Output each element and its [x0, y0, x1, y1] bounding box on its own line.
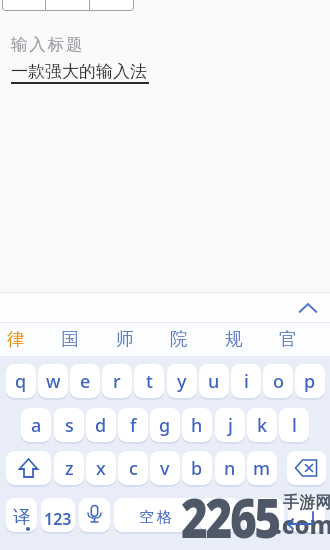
button[interactable] [294, 295, 322, 317]
button[interactable]: a [21, 408, 51, 442]
button[interactable]: u [199, 364, 229, 398]
button[interactable]: i [231, 364, 261, 398]
button[interactable]: 译 [6, 498, 37, 532]
button[interactable]: f [118, 408, 148, 442]
button[interactable]: y [167, 364, 197, 398]
staticText: x [96, 456, 106, 481]
button[interactable]: h [182, 408, 212, 442]
staticText: g [159, 413, 171, 438]
button[interactable]: s [54, 408, 84, 442]
staticText: u [208, 369, 220, 394]
staticText: 输入标题 [11, 34, 85, 55]
button[interactable]: g [150, 408, 180, 442]
staticText: 院 [170, 328, 188, 350]
button[interactable]: c [118, 451, 148, 485]
staticText: z [65, 456, 74, 481]
button[interactable]: 。 [244, 498, 284, 532]
button[interactable]: 师 [116, 326, 134, 352]
button[interactable]: b [182, 451, 212, 485]
button[interactable]: ， [200, 498, 240, 532]
button[interactable]: d [86, 408, 116, 442]
staticText: m [253, 456, 271, 481]
staticText: y [177, 369, 187, 394]
staticText: 123 [44, 508, 72, 530]
button[interactable]: x [86, 451, 116, 485]
button[interactable]: j [215, 408, 245, 442]
staticText: 2265 [181, 480, 279, 550]
button[interactable]: k [247, 408, 277, 442]
staticText: 国 [61, 328, 79, 350]
staticText: 空格 [138, 508, 173, 527]
staticText: 手游网 [283, 493, 330, 513]
button[interactable] [2, 0, 134, 11]
button[interactable]: v [150, 451, 180, 485]
button[interactable]: 官 [279, 326, 297, 352]
button[interactable]: m [247, 451, 277, 485]
staticText: v [160, 456, 170, 481]
staticText: n [224, 456, 236, 481]
staticText: d [95, 413, 107, 438]
button[interactable]: l [279, 408, 309, 442]
staticText: 律 [7, 328, 25, 350]
staticText: 译 [13, 506, 31, 528]
staticText: e [80, 369, 91, 394]
button[interactable]: q [6, 364, 36, 398]
button[interactable]: t [134, 364, 164, 398]
button[interactable] [287, 451, 326, 485]
staticText: w [46, 369, 61, 394]
staticText: a [31, 413, 42, 438]
staticText: 师 [116, 328, 134, 350]
button[interactable] [6, 451, 51, 485]
button[interactable]: o [263, 364, 293, 398]
button[interactable] [288, 498, 325, 532]
button[interactable]: 123 [41, 498, 75, 532]
staticText: c [129, 456, 138, 481]
button[interactable]: r [102, 364, 132, 398]
staticText: s [65, 413, 74, 438]
button[interactable]: 规 [225, 326, 243, 352]
staticText: r [113, 369, 121, 394]
button[interactable]: p [295, 364, 325, 398]
staticText: l [292, 413, 297, 438]
staticText: i [244, 369, 249, 394]
staticText: o [273, 369, 284, 394]
button[interactable]: n [215, 451, 245, 485]
staticText: p [304, 369, 316, 394]
button[interactable]: z [54, 451, 84, 485]
staticText: k [257, 413, 268, 438]
staticText: ， [213, 506, 227, 524]
staticText: 一款强大的输入法 [11, 61, 147, 82]
button[interactable] [79, 498, 110, 532]
button[interactable]: w [38, 364, 68, 398]
staticText: q [15, 369, 27, 394]
staticText: 官 [279, 328, 297, 350]
staticText: f [130, 413, 137, 438]
staticText: .com [275, 508, 330, 541]
staticText: t [146, 369, 153, 394]
button[interactable]: 国 [61, 326, 79, 352]
button[interactable]: e [70, 364, 100, 398]
staticText: j [228, 413, 233, 438]
staticText: 规 [225, 328, 243, 350]
button[interactable]: 律 [7, 326, 25, 352]
staticText: b [191, 456, 203, 481]
button[interactable]: 院 [170, 326, 188, 352]
staticText: h [191, 413, 203, 438]
staticText: 。 [257, 506, 271, 524]
button[interactable]: 空格 [114, 498, 196, 532]
